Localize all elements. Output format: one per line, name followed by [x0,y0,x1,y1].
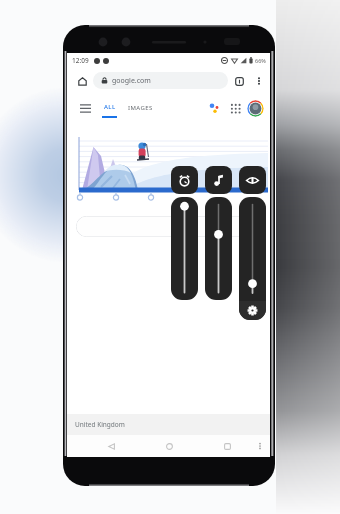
staticText: United Kingdom [75,420,125,429]
button[interactable]: ALARM [171,166,198,194]
button[interactable]: Google apps [227,100,243,116]
button[interactable]: Search by image [206,100,222,116]
button[interactable]: Overflow menu [252,438,268,454]
button[interactable]: Home [73,72,91,90]
button[interactable]: Account [247,100,264,117]
staticText: google.com [112,76,151,86]
button[interactable]: Volume slider [205,197,232,300]
button[interactable]: Home [161,438,178,455]
staticText: ALL [104,103,116,111]
button[interactable]: IMAGES [128,104,153,112]
button[interactable]: Tabs [230,72,248,90]
button[interactable]: Menu [77,100,93,116]
button[interactable]: Sound settings [239,301,266,320]
button[interactable]: google.com [93,72,228,89]
button[interactable]: Volume slider [239,197,266,320]
staticText: 12:09 [72,56,89,65]
button[interactable]: Back [103,438,120,455]
button[interactable] [67,123,270,203]
button[interactable]: Recent apps [219,438,236,455]
staticText: 66% [255,57,266,64]
button[interactable]: Volume slider [171,197,198,300]
button[interactable]: RING [239,166,266,194]
button[interactable]: MUSIC [205,166,232,194]
button[interactable]: More options [252,74,266,88]
button[interactable] [76,216,261,237]
button[interactable]: ALL [102,93,117,123]
